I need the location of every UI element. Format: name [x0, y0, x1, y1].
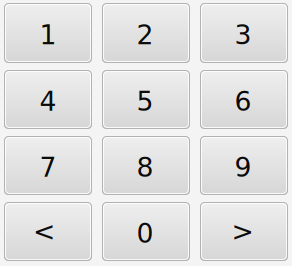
staticText: <: [33, 216, 55, 247]
staticText: 5: [136, 86, 153, 117]
button[interactable]: Next: [200, 202, 288, 261]
button[interactable]: Previous: [4, 202, 92, 261]
staticText: 2: [136, 19, 153, 50]
button[interactable]: 9: [200, 136, 288, 195]
staticText: 9: [234, 152, 251, 183]
staticText: 3: [234, 19, 251, 50]
staticText: 6: [234, 86, 251, 117]
button[interactable]: 3: [200, 3, 288, 63]
button[interactable]: 6: [200, 70, 288, 129]
button[interactable]: 8: [102, 136, 190, 195]
button[interactable]: 7: [4, 136, 92, 195]
staticText: 0: [136, 218, 153, 249]
button[interactable]: 5: [102, 70, 190, 129]
staticText: 4: [39, 86, 56, 117]
staticText: 7: [39, 152, 56, 183]
button[interactable]: 4: [4, 70, 92, 129]
button[interactable]: 0: [102, 202, 190, 261]
staticText: >: [231, 216, 253, 247]
button[interactable]: 2: [102, 3, 190, 63]
staticText: 1: [39, 19, 56, 50]
button[interactable]: 1: [4, 3, 92, 63]
staticText: 8: [136, 152, 153, 183]
